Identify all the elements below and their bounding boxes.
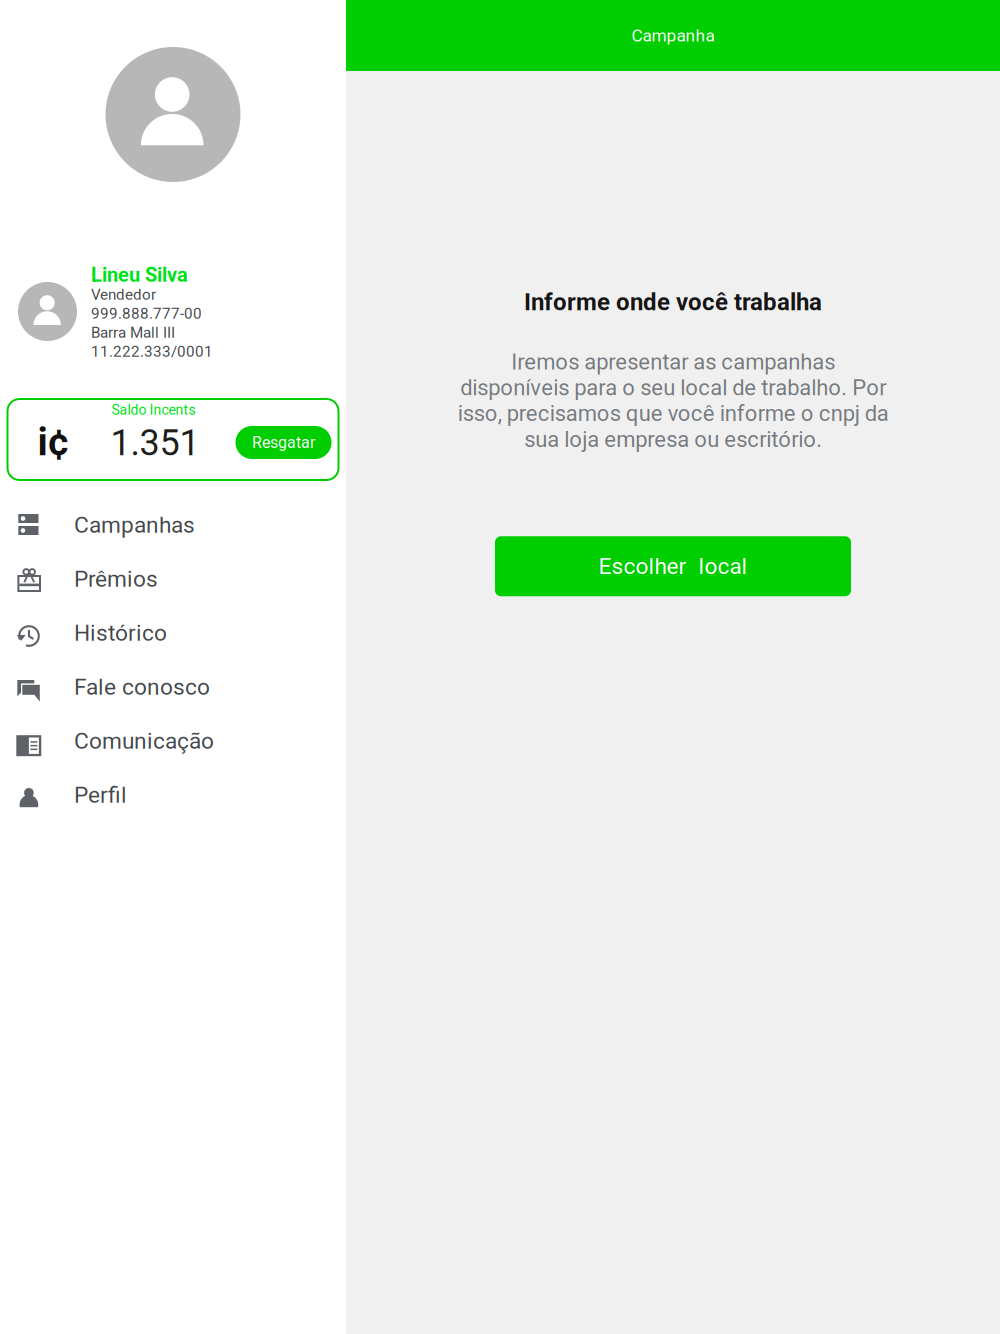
staticText: Informe onde você trabalha [524,288,822,316]
staticText: 999.888.777-00 [91,305,202,322]
staticText: Iremos apresentar as campanhas disponíve… [457,349,888,452]
staticText: Resgatar [252,433,315,452]
button[interactable]: Comunicação [0,714,346,768]
staticText: i¢ [37,419,69,465]
staticText: Campanhas [74,512,195,538]
staticText: 11.222.333/0001 [91,343,213,360]
staticText: Barra Mall III [91,324,175,341]
staticText: Campanha [631,25,714,46]
button[interactable]: Fale conosco [0,660,346,714]
button[interactable]: Campanhas [0,498,346,552]
staticText: Escolher local [598,553,747,580]
button[interactable]: Resgatar [235,426,331,459]
button[interactable]: Escolher local [495,536,851,596]
button[interactable]: Perfil [0,768,346,822]
staticText: Prêmios [74,566,158,592]
staticText: Comunicação [74,728,214,754]
staticText: Fale conosco [74,674,210,700]
staticText: Histórico [74,620,167,646]
button[interactable]: Histórico [0,606,346,660]
staticText: Vendedor [91,286,156,303]
button[interactable]: Prêmios [0,552,346,606]
staticText: Saldo Incents [111,402,195,418]
staticText: Perfil [74,782,127,808]
staticText: Lineu Silva [91,263,188,287]
staticText: 1.351 [110,422,199,464]
